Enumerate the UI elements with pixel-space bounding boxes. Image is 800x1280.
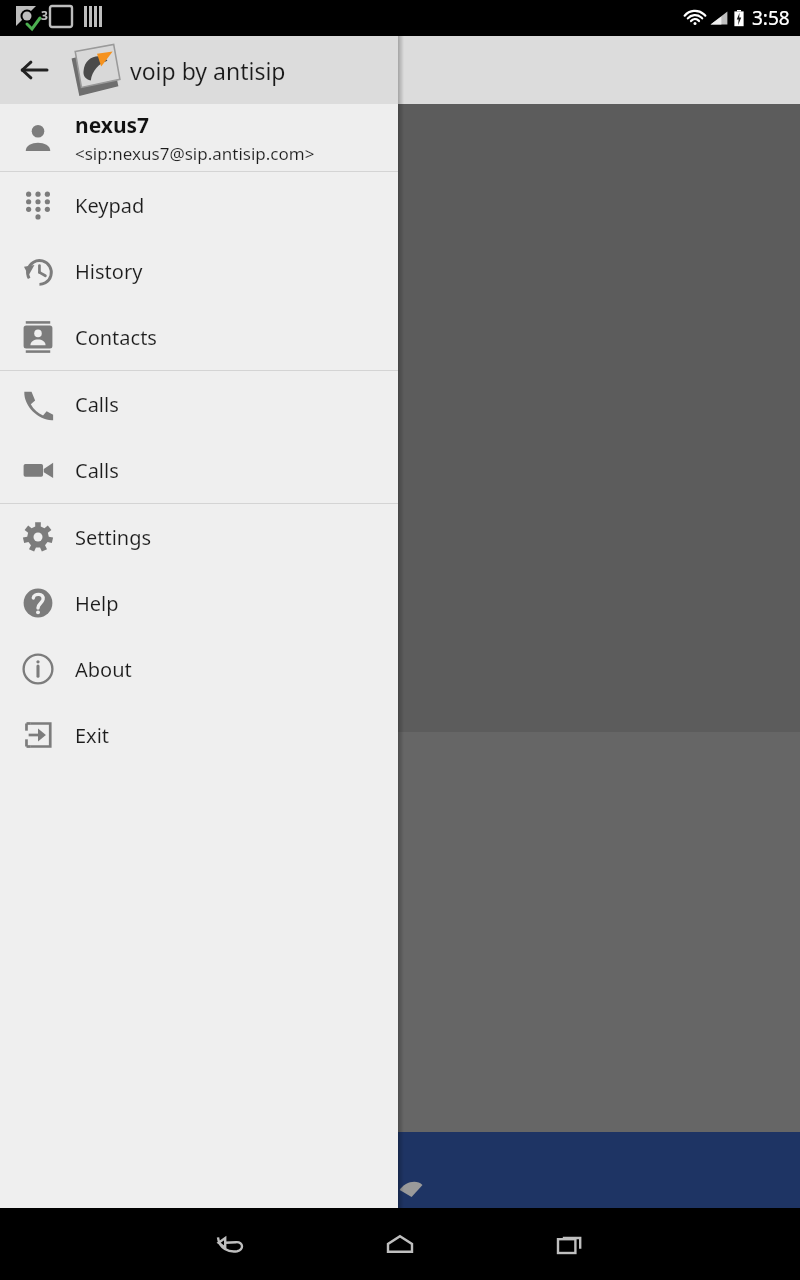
staticText: Calls	[75, 457, 119, 484]
staticText: 3	[41, 7, 48, 23]
button[interactable]: Exit	[0, 702, 398, 768]
button[interactable]: Home	[340, 1208, 460, 1280]
button[interactable]: Recent apps	[510, 1208, 630, 1280]
staticText: Exit	[75, 722, 110, 749]
staticText: Calls	[75, 391, 119, 418]
staticText: <sip:nexus7@sip.antisip.com>	[75, 142, 315, 165]
button[interactable]: Back	[170, 1208, 290, 1280]
button[interactable]: History	[0, 238, 398, 304]
staticText: About	[75, 656, 132, 683]
staticText: Settings	[75, 524, 152, 551]
staticText: History	[75, 258, 143, 285]
staticText: Keypad	[75, 192, 145, 219]
staticText: nexus7	[75, 111, 150, 140]
button[interactable]: Calls	[0, 437, 398, 503]
button[interactable]: About	[0, 636, 398, 702]
button[interactable]: Help	[0, 570, 398, 636]
staticText: voip by antisip	[130, 55, 286, 86]
button[interactable]: Contacts	[0, 304, 398, 370]
staticText: 3:58	[752, 5, 790, 31]
staticText: Help	[75, 590, 119, 617]
button[interactable]: nexus7	[0, 104, 398, 172]
button[interactable]: Navigate up	[0, 36, 68, 104]
button[interactable]: Calls	[0, 371, 398, 437]
button[interactable]: Settings	[0, 504, 398, 570]
staticText: Contacts	[75, 324, 157, 351]
button[interactable]: Keypad	[0, 172, 398, 238]
